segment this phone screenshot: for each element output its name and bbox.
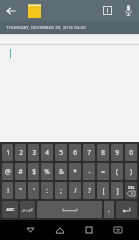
staticText: 9 [115,148,119,157]
button[interactable] [0,34,139,142]
button[interactable]: ( [111,163,123,180]
button[interactable]: $ [28,163,39,180]
button[interactable]: Voice input [118,0,139,21]
staticText: [ [102,186,105,195]
button[interactable]: = [97,163,109,180]
staticText: ; [60,186,62,195]
button[interactable]: ; [55,182,67,199]
button[interactable]: # [15,163,26,180]
button[interactable]: 8 [97,144,109,161]
staticText: 0 [129,148,133,157]
staticText: : [46,186,48,195]
button[interactable]: @ [2,163,13,180]
button[interactable]: Enter [116,201,137,218]
button[interactable]: " [15,182,26,199]
button[interactable]: * [69,163,81,180]
staticText: 7 [87,148,91,157]
button[interactable]: 1 [2,144,13,161]
staticText: ' [33,186,35,195]
button[interactable]: ! [2,182,13,199]
button[interactable]: ) [125,163,137,180]
button[interactable]: / [69,182,81,199]
staticText: ( [116,167,118,176]
button[interactable]: 6 [69,144,81,161]
button[interactable]: کوردی [20,201,35,218]
staticText: 2 [19,148,23,157]
button[interactable]: - [83,163,95,180]
button[interactable]: : [41,182,53,199]
staticText: = [101,167,105,176]
staticText: 6 [73,148,77,157]
staticText: کوردی [22,207,33,212]
button[interactable]: 2 [15,144,26,161]
staticText: - [88,167,91,176]
button[interactable]: [ [97,182,109,199]
button[interactable]: 7 [83,144,95,161]
button[interactable]: DEL [125,182,137,199]
staticText: * [73,167,77,176]
button[interactable]: 5 [55,144,67,161]
button[interactable]: Notepad [24,0,44,21]
staticText: " [19,186,22,195]
button[interactable]: ? [83,182,95,199]
staticText: THURSDAY, DECEMBER 29, 2016 03:50 [6,25,86,31]
staticText: ] [116,186,119,195]
staticText: % [44,167,50,176]
button[interactable]: Format [97,0,118,21]
button[interactable]: Hide keyboard [103,220,132,240]
staticText: 5 [59,148,63,157]
staticText: ! [7,186,9,195]
staticText: # [18,167,23,176]
staticText: 3 [32,148,36,157]
button[interactable]: 3 [28,144,39,161]
button[interactable]: Back [0,0,21,21]
button[interactable]: 9 [111,144,123,161]
button[interactable]: ] [111,182,123,199]
button[interactable]: Space [37,201,102,218]
staticText: $ [32,167,36,176]
staticText: ? [88,186,91,195]
button[interactable]: 0 [125,144,137,161]
button[interactable]: % [41,163,53,180]
button[interactable]: Recents [74,220,103,240]
button[interactable]: ABC [2,201,18,218]
staticText: 8 [101,148,105,157]
staticText: ABC [6,207,15,213]
button[interactable]: Home [45,220,74,240]
staticText: 1 [6,148,10,157]
staticText: DEL [128,185,135,190]
button[interactable]: 4 [41,144,53,161]
button[interactable]: ' [28,182,39,199]
staticText: @ [5,167,11,176]
button[interactable]: Back [16,220,45,240]
staticText: & [59,167,64,176]
staticText: ) [130,167,132,176]
staticText: , [108,206,110,213]
button[interactable]: & [55,163,67,180]
staticText: / [74,186,77,195]
staticText: 4 [45,148,49,157]
button[interactable]: , [104,201,114,218]
